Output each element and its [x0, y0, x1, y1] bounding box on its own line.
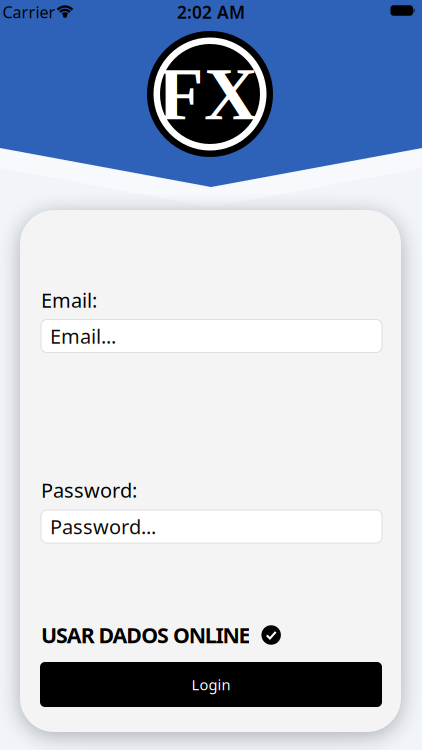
button[interactable]: Login: [40, 662, 382, 707]
button[interactable]: USAR DADOS ONLINE: [41, 621, 382, 649]
staticText: FX: [158, 53, 258, 135]
button[interactable]: Email...: [41, 319, 382, 352]
staticText: Login: [191, 675, 230, 694]
staticText: Carrier: [2, 1, 55, 23]
staticText: Password:: [41, 477, 137, 503]
staticText: USAR DADOS ONLINE: [41, 621, 250, 649]
staticText: Email:: [41, 287, 97, 313]
staticText: Password...: [50, 513, 156, 540]
button[interactable]: Password...: [41, 510, 382, 543]
staticText: Email...: [50, 323, 116, 349]
staticText: 2:02 AM: [177, 0, 245, 23]
